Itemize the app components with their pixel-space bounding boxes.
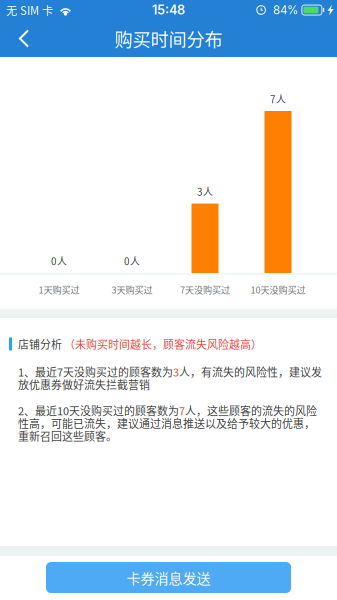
staticText: 0人 xyxy=(124,254,140,268)
button[interactable]: 返回 xyxy=(0,20,48,57)
staticText: 卡券消息发送 xyxy=(126,567,210,588)
staticText: 3天购买过 xyxy=(111,283,152,296)
staticText: 3人 xyxy=(197,184,213,199)
staticText: 15:48 xyxy=(152,2,185,18)
staticText: 店铺分析 （未购买时间越长，顾客流失风险越高） xyxy=(18,336,262,352)
staticText: 10天没购买过 xyxy=(250,283,305,296)
staticText: 0人 xyxy=(51,254,67,268)
staticText: 2、最近10天没购买过的顾客数为7人，这些顾客的流失的风险性高，可能已流失，建议… xyxy=(18,402,317,444)
staticText: 1、最近7天没购买过的顾客数为3人，有流失的风险性，建议发放优惠券做好流失拦截营… xyxy=(18,364,322,392)
staticText: 无 SIM 卡 xyxy=(6,2,53,18)
staticText: 购买时间分布 xyxy=(114,25,222,52)
staticText: 84% xyxy=(273,3,298,17)
button[interactable]: 卡券消息发送 xyxy=(46,562,291,593)
staticText: 7人 xyxy=(270,92,286,106)
staticText: 1天购买过 xyxy=(38,283,79,296)
staticText: 7天没购买过 xyxy=(180,283,230,296)
